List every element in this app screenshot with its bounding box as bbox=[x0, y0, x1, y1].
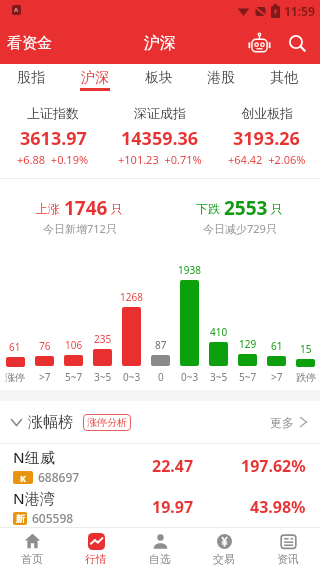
staticText: 沪深 bbox=[144, 33, 176, 53]
button[interactable]: N纽威 bbox=[0, 444, 320, 487]
button[interactable]: 上涨 bbox=[0, 179, 160, 248]
staticText: 1746 bbox=[64, 195, 108, 221]
button[interactable]: 下跌 bbox=[160, 179, 320, 248]
staticText: 今日新增712只 bbox=[43, 221, 117, 236]
staticText: 410 bbox=[210, 325, 228, 339]
staticText: 沪深 bbox=[81, 69, 109, 87]
button[interactable]: 股指 bbox=[3, 64, 59, 91]
staticText: 197.62% bbox=[241, 455, 306, 477]
button[interactable]: 深证成指 bbox=[106, 91, 213, 178]
staticText: 0~3 bbox=[181, 370, 199, 384]
button[interactable]: 港股 bbox=[193, 64, 249, 91]
staticText: 跌停 bbox=[296, 371, 316, 384]
staticText: 新 bbox=[16, 513, 25, 524]
staticText: 创业板指 bbox=[241, 105, 293, 121]
button[interactable] bbox=[248, 32, 271, 55]
staticText: 11:59 bbox=[284, 3, 315, 19]
staticText: 14359.36 bbox=[121, 126, 199, 151]
staticText: 只 bbox=[268, 200, 284, 216]
staticText: 5~7 bbox=[239, 370, 257, 384]
staticText: 2553 bbox=[224, 195, 268, 221]
staticText: 涨停 bbox=[5, 371, 25, 384]
staticText: 235 bbox=[94, 332, 112, 346]
staticText: 0 bbox=[158, 370, 164, 384]
staticText: 0~3 bbox=[123, 370, 141, 384]
staticText: 上证指数 bbox=[27, 105, 79, 121]
staticText: 76 bbox=[39, 339, 51, 353]
button[interactable]: 自选 bbox=[128, 528, 192, 569]
button[interactable]: N港湾 bbox=[0, 487, 320, 527]
staticText: 深证成指 bbox=[134, 105, 186, 121]
staticText: 港股 bbox=[207, 69, 235, 87]
button[interactable]: 交易 bbox=[192, 528, 256, 569]
staticText: 61 bbox=[271, 339, 283, 353]
staticText: 看资金 bbox=[7, 34, 52, 53]
staticText: 61 bbox=[9, 340, 21, 354]
staticText: N纽威 bbox=[13, 447, 55, 467]
staticText: A bbox=[14, 6, 19, 14]
button[interactable]: 涨幅榜 bbox=[0, 401, 320, 443]
staticText: 股指 bbox=[17, 69, 45, 87]
button[interactable]: 资讯 bbox=[256, 528, 320, 569]
staticText: +64.42 +2.06% bbox=[228, 152, 306, 167]
staticText: 87 bbox=[155, 338, 167, 352]
staticText: >7 bbox=[271, 370, 283, 384]
staticText: 129 bbox=[239, 337, 257, 351]
staticText: 43.98% bbox=[250, 496, 306, 518]
staticText: 3~5 bbox=[94, 370, 112, 384]
button[interactable]: 看资金 bbox=[0, 34, 52, 53]
staticText: 605598 bbox=[32, 510, 74, 526]
staticText: 更多 bbox=[270, 415, 294, 430]
button[interactable]: 首页 bbox=[0, 528, 64, 569]
staticText: K bbox=[20, 472, 26, 484]
staticText: 交易 bbox=[213, 552, 235, 566]
button[interactable]: 涨停分析 bbox=[83, 414, 131, 431]
staticText: 只 bbox=[108, 200, 124, 216]
staticText: N港湾 bbox=[13, 488, 55, 508]
staticText: 自选 bbox=[149, 552, 171, 566]
button[interactable] bbox=[288, 34, 307, 53]
staticText: 涨幅榜 bbox=[28, 413, 73, 432]
staticText: 资讯 bbox=[277, 552, 299, 566]
staticText: 3193.26 bbox=[233, 126, 300, 151]
button[interactable]: 行情 bbox=[64, 528, 128, 569]
staticText: 5~7 bbox=[65, 370, 83, 384]
staticText: 19.97 bbox=[152, 496, 194, 518]
staticText: 行情 bbox=[85, 552, 107, 566]
staticText: 上涨 bbox=[36, 200, 64, 216]
staticText: 1268 bbox=[120, 290, 143, 304]
button[interactable]: 沪深 bbox=[66, 64, 124, 91]
staticText: 15 bbox=[300, 342, 312, 356]
button[interactable]: 板块 bbox=[131, 64, 187, 91]
staticText: 688697 bbox=[38, 469, 80, 485]
staticText: 1938 bbox=[178, 263, 201, 277]
staticText: 下跌 bbox=[196, 200, 224, 216]
staticText: 涨停分析 bbox=[87, 416, 127, 429]
staticText: 106 bbox=[65, 338, 83, 352]
staticText: 今日减少729只 bbox=[203, 221, 277, 236]
button[interactable]: 上证指数 bbox=[0, 91, 106, 178]
staticText: 3613.97 bbox=[20, 126, 87, 151]
button[interactable]: 创业板指 bbox=[213, 91, 320, 178]
staticText: >7 bbox=[39, 370, 51, 384]
button[interactable]: 其他 bbox=[256, 64, 312, 91]
staticText: 其他 bbox=[270, 69, 298, 87]
staticText: +101.23 +0.71% bbox=[118, 152, 202, 167]
staticText: 3~5 bbox=[210, 370, 228, 384]
staticText: 板块 bbox=[145, 69, 173, 87]
staticText: 首页 bbox=[21, 552, 43, 566]
staticText: +6.88 +0.19% bbox=[17, 152, 89, 167]
staticText: 22.47 bbox=[152, 455, 194, 477]
